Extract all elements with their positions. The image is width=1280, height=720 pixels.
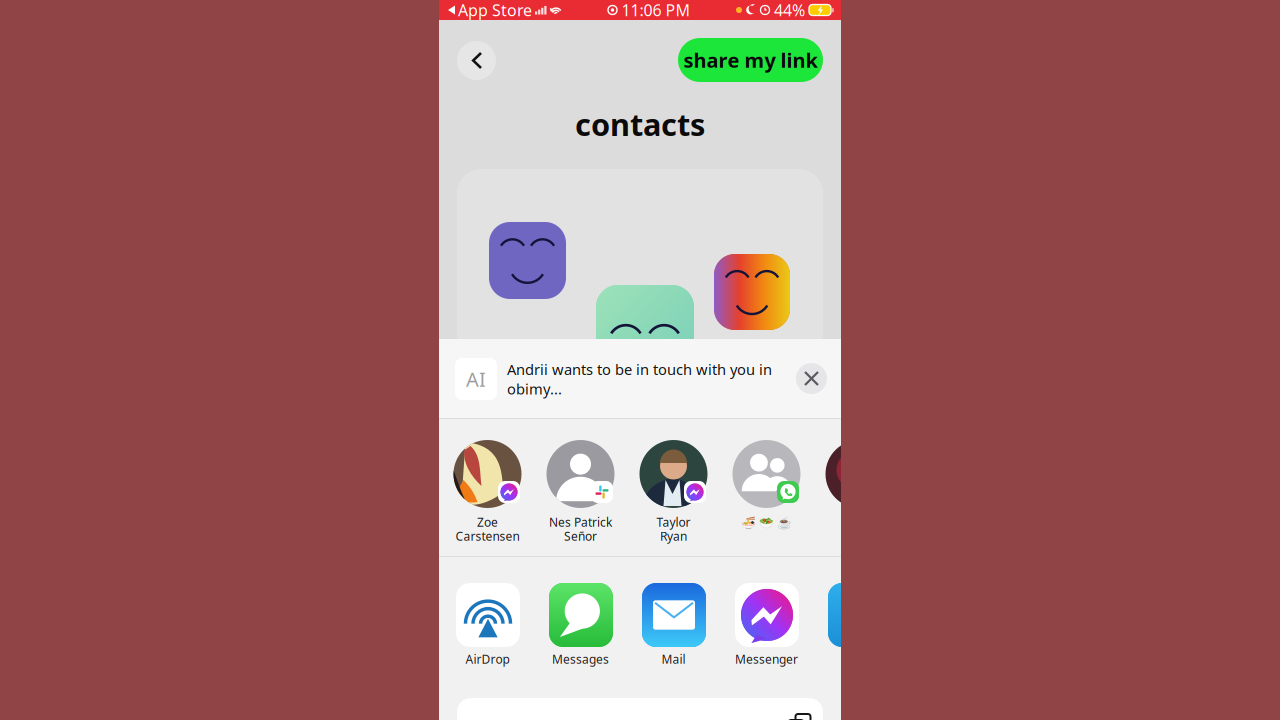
staticText: AirDrop [465, 651, 509, 667]
staticText: Señor [564, 528, 597, 544]
button[interactable]: Back [457, 41, 496, 80]
staticText: Messages [552, 651, 609, 667]
staticText: share my link [683, 47, 817, 73]
button[interactable]: AirDrop [441, 557, 534, 679]
button[interactable]: Zoe [441, 419, 534, 556]
button[interactable]: T [813, 557, 906, 679]
button[interactable]: Close [796, 363, 827, 394]
button[interactable]: Messages [534, 557, 627, 679]
button[interactable]: Nes Patrick [534, 419, 627, 556]
button[interactable]: Copy [457, 698, 823, 720]
staticText: AI [466, 366, 486, 392]
staticText: Messenger [735, 651, 798, 667]
staticText: Zoe [477, 514, 498, 530]
staticText: Ryan [660, 528, 687, 544]
staticText: 🍜 🥗 ☕ [741, 514, 792, 530]
staticText: Andrii wants to be in touch with you in … [507, 359, 772, 398]
button[interactable]: Taylor [627, 419, 720, 556]
button[interactable]: 🍜 🥗 ☕ [720, 419, 813, 556]
staticText: App Store [458, 0, 532, 21]
staticText: 44% [774, 0, 805, 21]
staticText: Mail [661, 651, 685, 667]
staticText: contacts [575, 104, 705, 144]
staticText: Carstensen [455, 528, 519, 544]
staticText: 11:06 PM [621, 0, 690, 21]
staticText: Nes Patrick [549, 514, 612, 530]
button[interactable]: B [813, 419, 906, 556]
button[interactable]: share my link [678, 38, 823, 82]
button[interactable]: Mail [627, 557, 720, 679]
staticText: Taylor [656, 514, 690, 530]
button[interactable]: Messenger [720, 557, 813, 679]
